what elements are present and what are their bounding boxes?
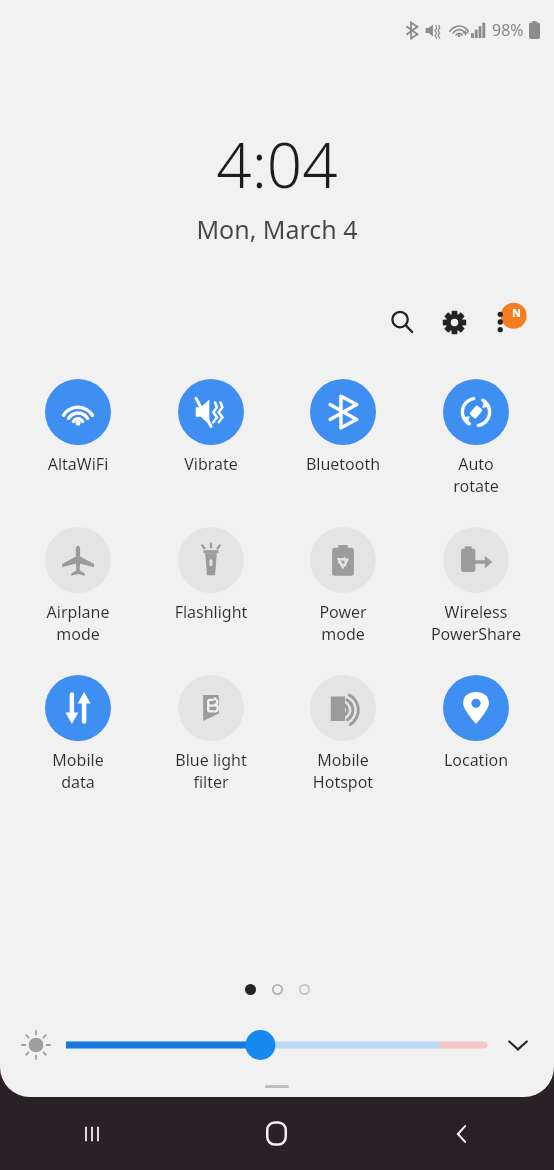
button[interactable]: AltaWiFi (15, 377, 141, 477)
button[interactable]: Recents (0, 1097, 184, 1170)
staticText: Wireless PowerShare (413, 601, 539, 645)
staticText: Blue light filter (148, 749, 274, 793)
staticText: Mobile data (15, 749, 141, 793)
staticText: Location (413, 749, 539, 771)
button[interactable]: Location (413, 673, 539, 773)
button[interactable]: Back (369, 1097, 554, 1170)
staticText: Auto rotate (413, 453, 539, 497)
button[interactable]: Auto rotate (413, 377, 539, 499)
button[interactable]: Home (184, 1097, 369, 1170)
button[interactable]: Vibrate (148, 377, 274, 477)
button[interactable]: Mobile Hotspot (280, 673, 406, 795)
staticText: Bluetooth (280, 453, 406, 475)
button[interactable]: Search (378, 298, 426, 346)
staticText: N (512, 305, 521, 320)
staticText: Power mode (280, 601, 406, 645)
button[interactable]: Flashlight (148, 525, 274, 625)
button[interactable]: Blue light filter (148, 673, 274, 795)
staticText: Flashlight (148, 601, 274, 623)
button[interactable]: Expand (496, 1023, 540, 1067)
button[interactable]: Power mode (280, 525, 406, 647)
staticText: Mobile Hotspot (280, 749, 406, 793)
button[interactable]: Airplane mode (15, 525, 141, 647)
staticText: 98% (492, 19, 524, 41)
button[interactable]: Settings (430, 298, 478, 346)
staticText: Airplane mode (15, 601, 141, 645)
button[interactable]: More options (482, 298, 530, 346)
button[interactable]: Bluetooth (280, 377, 406, 477)
button[interactable]: Wireless PowerShare (413, 525, 539, 647)
staticText: Mon, March 4 (0, 212, 554, 246)
button[interactable] (66, 1025, 484, 1065)
staticText: Vibrate (148, 453, 274, 475)
staticText: AltaWiFi (15, 453, 141, 475)
button[interactable]: Mobile data (15, 673, 141, 795)
staticText: 4:04 (0, 122, 554, 206)
